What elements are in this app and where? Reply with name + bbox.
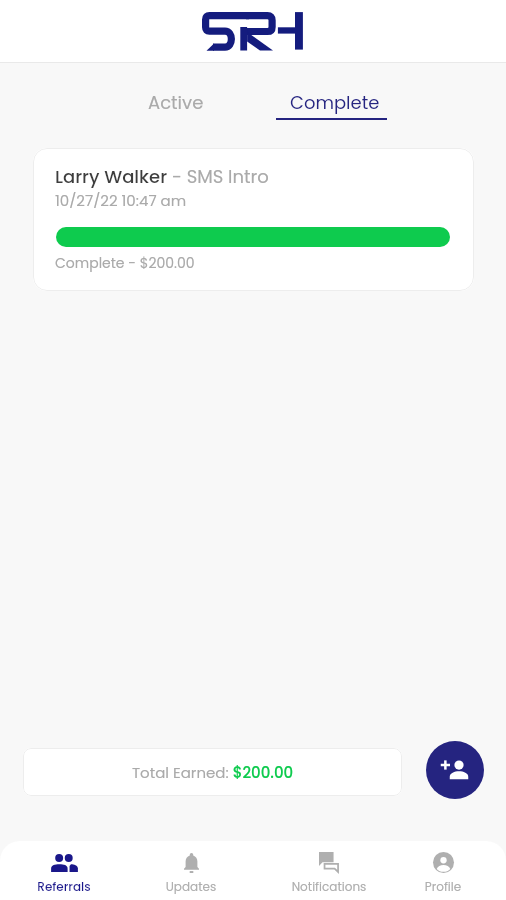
staticText: Profile bbox=[396, 878, 490, 895]
button[interactable]: Complete bbox=[255, 63, 414, 121]
staticText: Larry Walker - SMS Intro bbox=[55, 164, 269, 189]
staticText: Total Earned: $200.00 bbox=[132, 762, 294, 783]
button[interactable]: Larry Walker - SMS Intro bbox=[33, 148, 474, 291]
staticText: Referrals bbox=[17, 878, 111, 895]
button[interactable]: Notifications bbox=[282, 845, 376, 900]
staticText: Notifications bbox=[282, 878, 376, 895]
staticText: Active bbox=[148, 90, 204, 115]
button[interactable]: Updates bbox=[144, 845, 238, 900]
button[interactable]: Total Earned: $200.00 bbox=[23, 748, 402, 796]
staticText: Updates bbox=[144, 878, 238, 895]
button[interactable]: Referrals bbox=[17, 845, 111, 900]
staticText: Complete - $200.00 bbox=[55, 253, 195, 273]
button[interactable]: Add referral bbox=[426, 741, 484, 799]
button[interactable]: Active bbox=[96, 63, 255, 121]
staticText: 10/27/22 10:47 am bbox=[55, 190, 187, 211]
staticText: Complete bbox=[290, 90, 380, 115]
button[interactable]: Profile bbox=[396, 845, 490, 900]
